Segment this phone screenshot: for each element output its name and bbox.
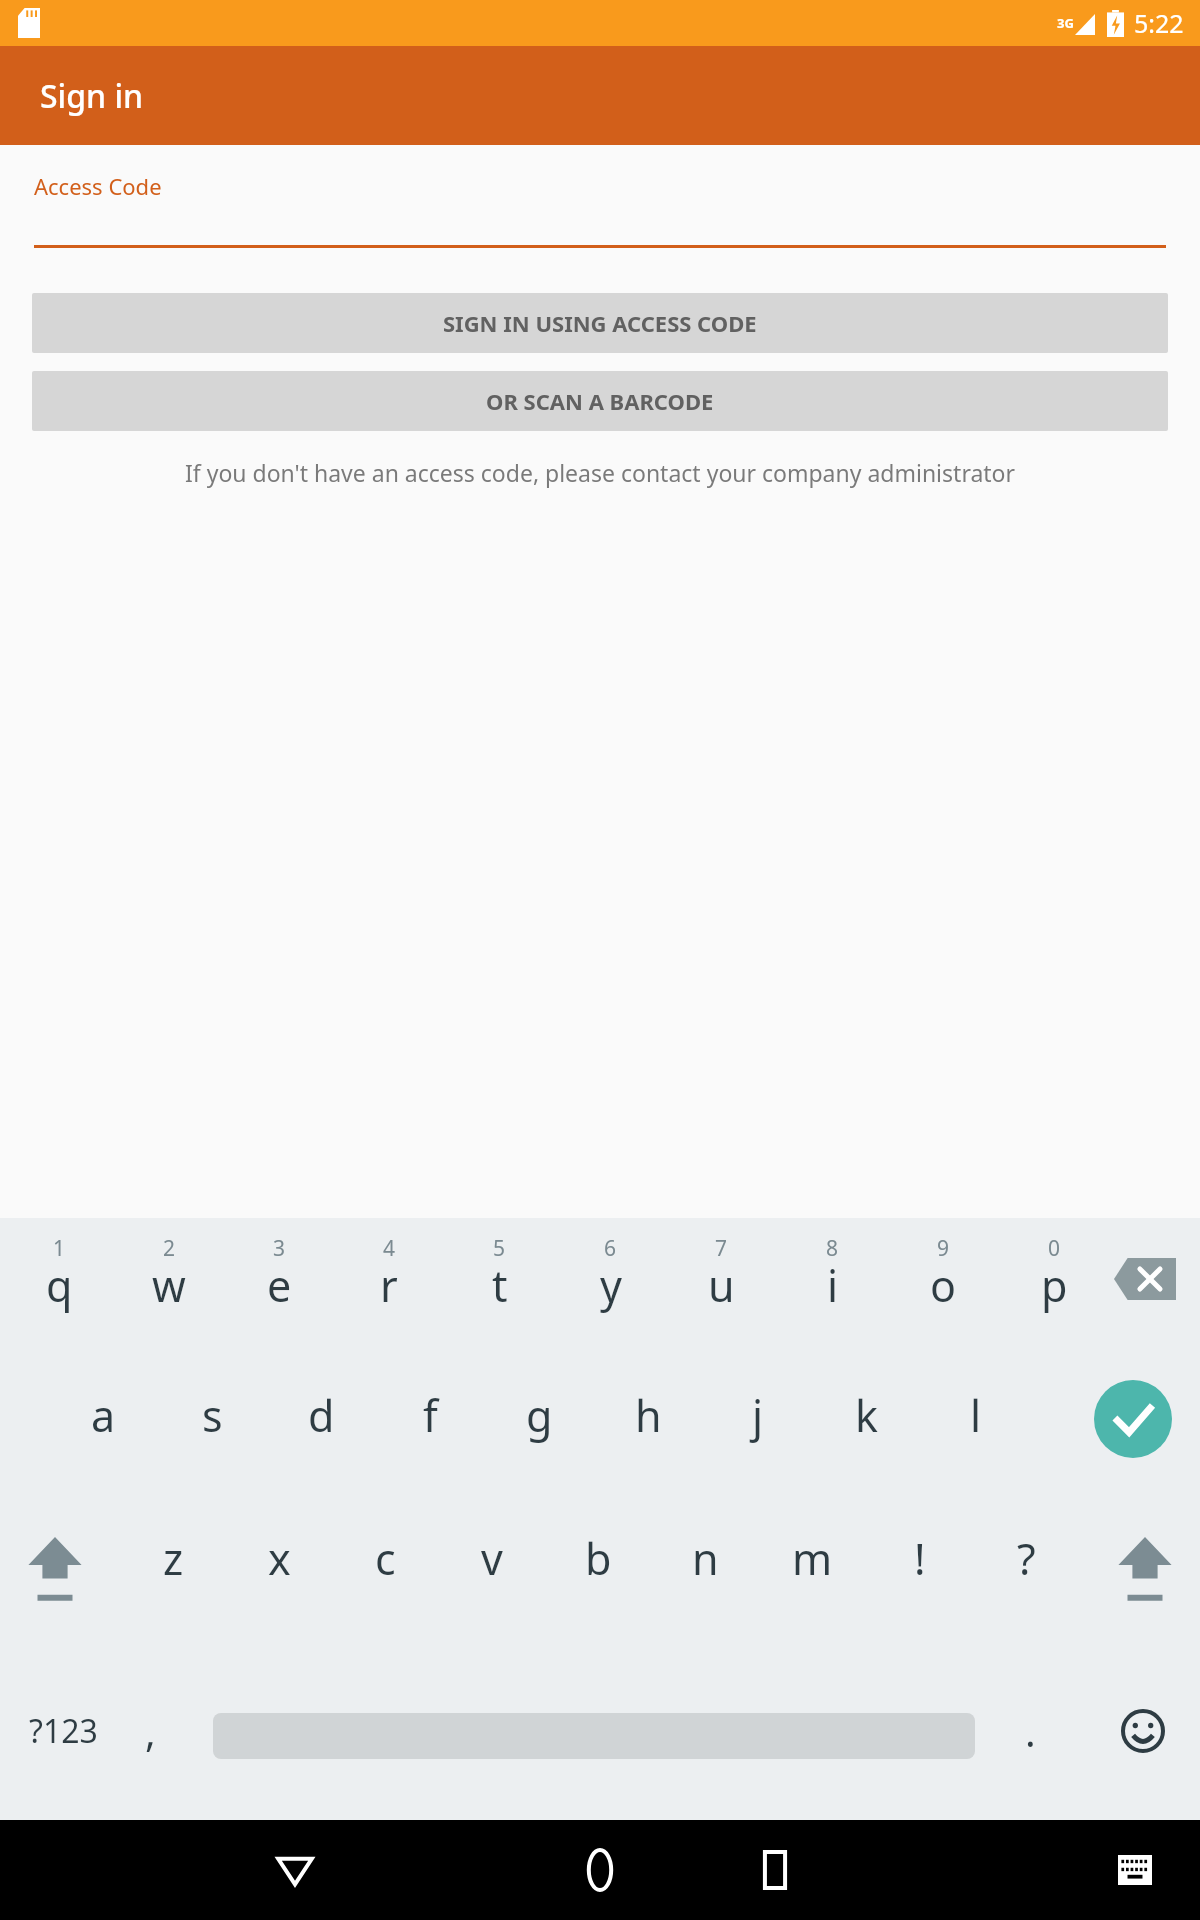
staticText: q: [46, 1256, 73, 1315]
button[interactable]: c: [332, 1511, 438, 1661]
button[interactable]: 5: [444, 1218, 555, 1366]
staticText: Access Code: [34, 171, 162, 201]
staticText: x: [268, 1529, 291, 1588]
staticText: j: [752, 1386, 764, 1445]
staticText: 4: [383, 1234, 396, 1263]
staticText: 9: [937, 1234, 950, 1263]
button[interactable]: g: [485, 1366, 594, 1511]
staticText: i: [827, 1256, 839, 1315]
button[interactable]: !: [866, 1511, 973, 1661]
staticText: 3G: [1057, 14, 1074, 32]
button[interactable]: ?123: [18, 1696, 108, 1766]
staticText: 6: [604, 1234, 617, 1263]
staticText: Sign in: [40, 74, 144, 118]
button[interactable]: Backspace: [1114, 1258, 1176, 1300]
staticText: ,: [145, 1704, 156, 1758]
button[interactable]: k: [812, 1366, 921, 1511]
button[interactable]: l: [921, 1366, 1030, 1511]
staticText: f: [423, 1386, 438, 1445]
button[interactable]: 8: [777, 1218, 888, 1366]
staticText: SIGN IN USING ACCESS CODE: [443, 308, 757, 338]
staticText: s: [202, 1386, 223, 1445]
staticText: d: [308, 1386, 335, 1445]
button[interactable]: 3: [224, 1218, 334, 1366]
staticText: n: [692, 1529, 719, 1588]
staticText: 3: [273, 1234, 286, 1263]
staticText: .: [1025, 1704, 1036, 1758]
staticText: 0: [1048, 1234, 1061, 1263]
staticText: !: [914, 1529, 926, 1588]
staticText: k: [855, 1386, 878, 1445]
button[interactable]: 2: [114, 1218, 224, 1366]
button[interactable]: 0: [999, 1218, 1110, 1366]
staticText: p: [1041, 1256, 1068, 1315]
staticText: OR SCAN A BARCODE: [486, 386, 714, 416]
button[interactable]: b: [545, 1511, 652, 1661]
button[interactable]: j: [703, 1366, 812, 1511]
staticText: ?123: [29, 1709, 98, 1753]
staticText: t: [492, 1256, 508, 1315]
staticText: m: [792, 1529, 833, 1588]
staticText: u: [708, 1256, 735, 1315]
button[interactable]: Shift: [1110, 1529, 1180, 1609]
staticText: 5: [493, 1234, 506, 1263]
button[interactable]: Back: [260, 1835, 330, 1905]
button[interactable]: 6: [555, 1218, 666, 1366]
button[interactable]: 1: [4, 1218, 114, 1366]
button[interactable]: .: [1000, 1696, 1060, 1766]
staticText: a: [91, 1386, 116, 1445]
button[interactable]: Home: [565, 1835, 635, 1905]
staticText: h: [635, 1386, 662, 1445]
staticText: 7: [715, 1234, 728, 1263]
button[interactable]: 9: [888, 1218, 999, 1366]
staticText: 1: [53, 1234, 66, 1263]
button[interactable]: z: [120, 1511, 226, 1661]
button[interactable]: m: [759, 1511, 866, 1661]
staticText: ?: [1017, 1529, 1036, 1588]
staticText: e: [267, 1256, 292, 1315]
button[interactable]: v: [438, 1511, 545, 1661]
staticText: b: [585, 1529, 612, 1588]
staticText: 8: [826, 1234, 839, 1263]
staticText: v: [481, 1529, 503, 1588]
button[interactable]: ?: [973, 1511, 1080, 1661]
button[interactable]: Recents: [740, 1835, 810, 1905]
button[interactable]: a: [48, 1366, 158, 1511]
button[interactable]: h: [594, 1366, 703, 1511]
button[interactable]: Emoji: [1110, 1698, 1176, 1764]
button[interactable]: OR SCAN A BARCODE: [32, 371, 1168, 431]
button[interactable]: Shift: [20, 1529, 90, 1609]
button[interactable]: x: [226, 1511, 332, 1661]
staticText: w: [152, 1256, 186, 1315]
staticText: c: [375, 1529, 396, 1588]
staticText: r: [380, 1256, 398, 1315]
button[interactable]: f: [376, 1366, 485, 1511]
staticText: y: [600, 1256, 622, 1315]
staticText: g: [526, 1386, 553, 1445]
button[interactable]: d: [267, 1366, 376, 1511]
button[interactable]: n: [652, 1511, 759, 1661]
staticText: 5:22: [1134, 6, 1184, 40]
staticText: l: [970, 1386, 982, 1445]
button[interactable]: Switch keyboard: [1105, 1840, 1165, 1900]
button[interactable]: Enter: [1094, 1380, 1172, 1458]
staticText: If you don't have an access code, please…: [24, 457, 1176, 488]
button[interactable]: ,: [120, 1696, 180, 1766]
staticText: 2: [163, 1234, 176, 1263]
staticText: o: [930, 1256, 957, 1315]
staticText: z: [163, 1529, 184, 1588]
button[interactable]: 4: [334, 1218, 444, 1366]
button[interactable]: 7: [666, 1218, 777, 1366]
button[interactable]: s: [158, 1366, 267, 1511]
button[interactable]: SIGN IN USING ACCESS CODE: [32, 293, 1168, 353]
